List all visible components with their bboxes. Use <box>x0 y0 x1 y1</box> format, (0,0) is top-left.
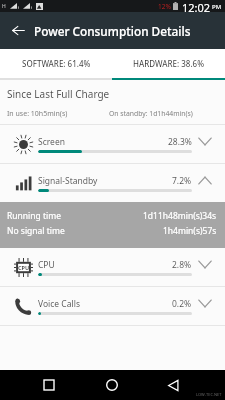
staticText: 12:02 <box>182 0 211 12</box>
staticText: Voice Calls <box>38 298 80 310</box>
staticText: PM <box>212 3 222 11</box>
staticText: Running time <box>7 210 143 222</box>
button[interactable]: CPU <box>0 248 225 286</box>
staticText: 7.2% <box>172 175 192 187</box>
staticText: CPU <box>38 259 55 271</box>
staticText: 1h4min(s)57s <box>163 225 217 237</box>
staticText: HARDWARE: 38.6% <box>133 58 204 69</box>
button[interactable]: Back <box>0 12 37 49</box>
button[interactable]: SOFTWARE: 61.4% <box>0 49 112 78</box>
staticText: On standby: 1d1h44min(s) <box>109 109 221 118</box>
staticText: 28.3% <box>168 136 192 148</box>
staticText: No signal time <box>7 225 163 237</box>
staticText: In use: 10h5min(s) <box>7 109 109 119</box>
staticText: Since Last Full Charge <box>7 87 110 101</box>
button[interactable]: Screen <box>0 125 225 163</box>
button[interactable]: Recent apps <box>28 370 70 400</box>
button[interactable]: Voice Calls <box>0 287 225 325</box>
staticText: H <box>2 3 6 10</box>
staticText: Signal-Standby <box>38 175 98 187</box>
button[interactable]: Signal-Standby <box>0 164 225 202</box>
staticText: 12% <box>158 2 171 11</box>
staticText: 2.8% <box>172 259 192 271</box>
staticText: CPU <box>18 264 30 271</box>
staticText: 0.2% <box>172 298 192 310</box>
button[interactable]: Home <box>91 370 133 400</box>
staticText: Power Consumption Details <box>34 23 191 39</box>
button[interactable]: HARDWARE: 38.6% <box>112 49 225 78</box>
staticText: Screen <box>38 136 65 148</box>
button[interactable]: Back <box>152 370 194 400</box>
staticText: SOFTWARE: 61.4% <box>22 58 91 69</box>
staticText: LOW-TEC.NET <box>196 392 222 397</box>
staticText: 1d11h48min(s)34s <box>143 210 217 222</box>
